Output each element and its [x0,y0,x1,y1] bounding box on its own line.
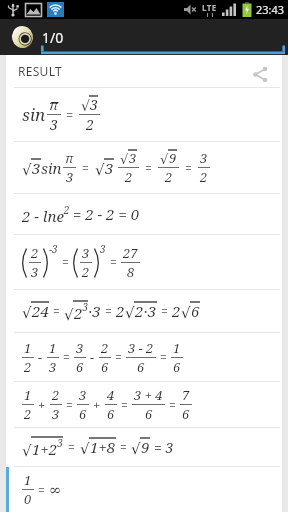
staticText: = [66,397,73,413]
staticText: + [93,396,101,414]
staticText: 1 [24,386,32,404]
staticText: 3 [105,158,114,178]
staticText: √ [80,440,90,457]
staticText: ∞ [49,481,62,498]
staticText: 23:43 [256,2,285,17]
staticText: 1/0 [42,28,64,47]
staticText: 2 [101,339,109,357]
staticText: = [185,160,192,176]
staticText: = 3 [154,438,174,457]
staticText: = [105,303,112,319]
staticText: = [145,160,152,176]
staticText: 3 [76,339,84,357]
staticText: 2 [200,168,208,186]
staticText: √ [120,152,129,167]
staticText: = 2 - 2 = 0 [73,204,140,224]
staticText: 23 [74,300,88,323]
staticText: √ [22,304,32,321]
staticText: 3 [32,158,41,178]
staticText: 8 [127,263,135,281]
staticText: 1 [173,339,181,357]
staticText: 3 [129,149,137,167]
staticText: 2 [165,168,173,186]
staticText: √ [160,152,169,167]
staticText: √ [131,440,141,457]
staticText: = [160,349,167,365]
button[interactable]: √ [22,142,282,193]
staticText: = [110,254,117,270]
staticText: √ [125,304,135,321]
staticText: 2 [116,301,125,321]
staticText: 6 [145,405,153,423]
staticText: √ [95,161,105,178]
staticText: = [82,160,89,176]
staticText: √ [64,306,74,323]
staticText: sin [22,103,46,126]
staticText: 7 [182,386,190,404]
staticText: 2 [125,168,133,186]
staticText: 24 [32,301,49,321]
staticText: LTE [202,2,217,13]
staticText: = [115,349,122,365]
staticText: = [53,303,60,319]
button[interactable] [12,25,33,49]
staticText: - [38,348,43,366]
staticText: 3 [100,242,106,256]
staticText: 3 [31,263,39,281]
staticText: 3 [66,168,74,186]
button[interactable]: √ [22,428,282,466]
staticText: 3 [82,244,90,262]
staticText: = [68,439,75,455]
staticText: 2 [86,115,94,134]
button[interactable]: 2 - lne2 [22,194,282,234]
staticText: = [63,349,70,365]
staticText: -3 [49,242,58,256]
staticText: 6 [76,358,84,376]
staticText: 1+23 [32,436,63,459]
button[interactable]: 2 [22,235,282,289]
staticText: 1+8 [90,437,116,457]
staticText: √ [22,442,32,459]
staticText: = [121,397,128,413]
staticText: 6 [79,405,87,423]
staticText: 6 [182,405,190,423]
staticText: = [38,482,45,498]
staticText: 2 [24,358,32,376]
staticText: 2·3 [135,301,157,321]
button[interactable]: 1 [22,467,282,512]
staticText: 3 [79,386,87,404]
staticText: 6 [137,358,145,376]
staticText: π [65,149,74,167]
staticText: = [66,106,74,124]
staticText: 2 - lne2 [22,203,70,226]
staticText: 4 [107,386,115,404]
staticText: 2 [31,244,39,262]
staticText: RESULT [18,63,63,79]
staticText: 6 [107,405,115,423]
staticText: = [161,303,168,319]
staticText: ·3 [88,301,101,321]
staticText: √ [22,161,32,178]
staticText: 3 + 4 [134,386,163,404]
staticText: 3 [50,115,58,134]
button[interactable]: √ [22,290,282,332]
button[interactable]: 1 [22,382,282,427]
staticText: 1 [24,471,32,489]
staticText: π [49,95,59,114]
staticText: 1 [49,339,57,357]
staticText: = [62,254,69,270]
staticText: 2 [52,386,60,404]
staticText: = [120,439,127,455]
staticText: 3 [90,95,98,114]
staticText: 2 [172,301,181,321]
staticText: 3 [49,358,57,376]
button[interactable] [252,66,269,83]
button[interactable]: sin [22,88,282,141]
staticText: 2 [82,263,90,281]
staticText: 3 [200,149,208,167]
staticText: 3 [52,405,60,423]
staticText: √ [81,98,90,114]
staticText: + [38,396,46,414]
button[interactable]: 1 [22,333,282,381]
staticText: 2 [24,405,32,423]
